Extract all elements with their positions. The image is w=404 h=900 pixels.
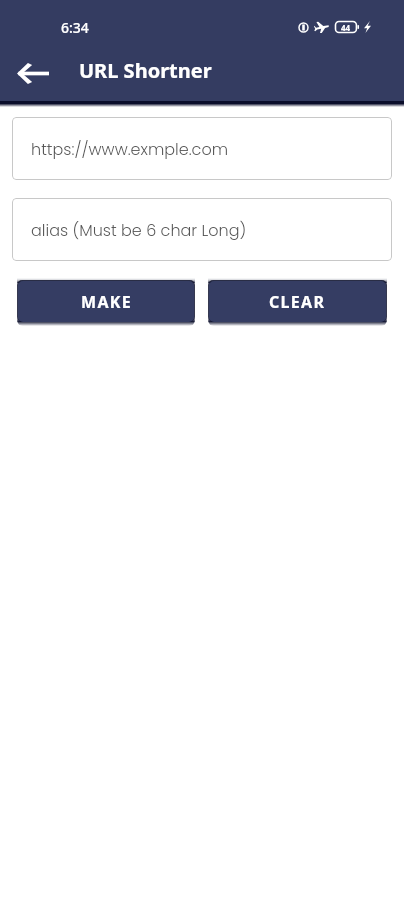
staticText: https://www.exmple.com	[31, 138, 229, 160]
staticText: 44	[341, 22, 351, 33]
button[interactable]: Back	[0, 43, 66, 98]
staticText: alias (Must be 6 char Long)	[31, 219, 247, 241]
button[interactable]: https://www.exmple.com	[12, 117, 392, 180]
staticText: CLEAR	[269, 291, 326, 313]
staticText: URL Shortner	[79, 57, 212, 84]
button[interactable]: alias (Must be 6 char Long)	[12, 198, 392, 261]
button[interactable]: CLEAR	[209, 281, 386, 322]
staticText: 6:34	[61, 18, 89, 37]
staticText: MAKE	[81, 291, 132, 313]
button[interactable]: MAKE	[18, 281, 194, 322]
